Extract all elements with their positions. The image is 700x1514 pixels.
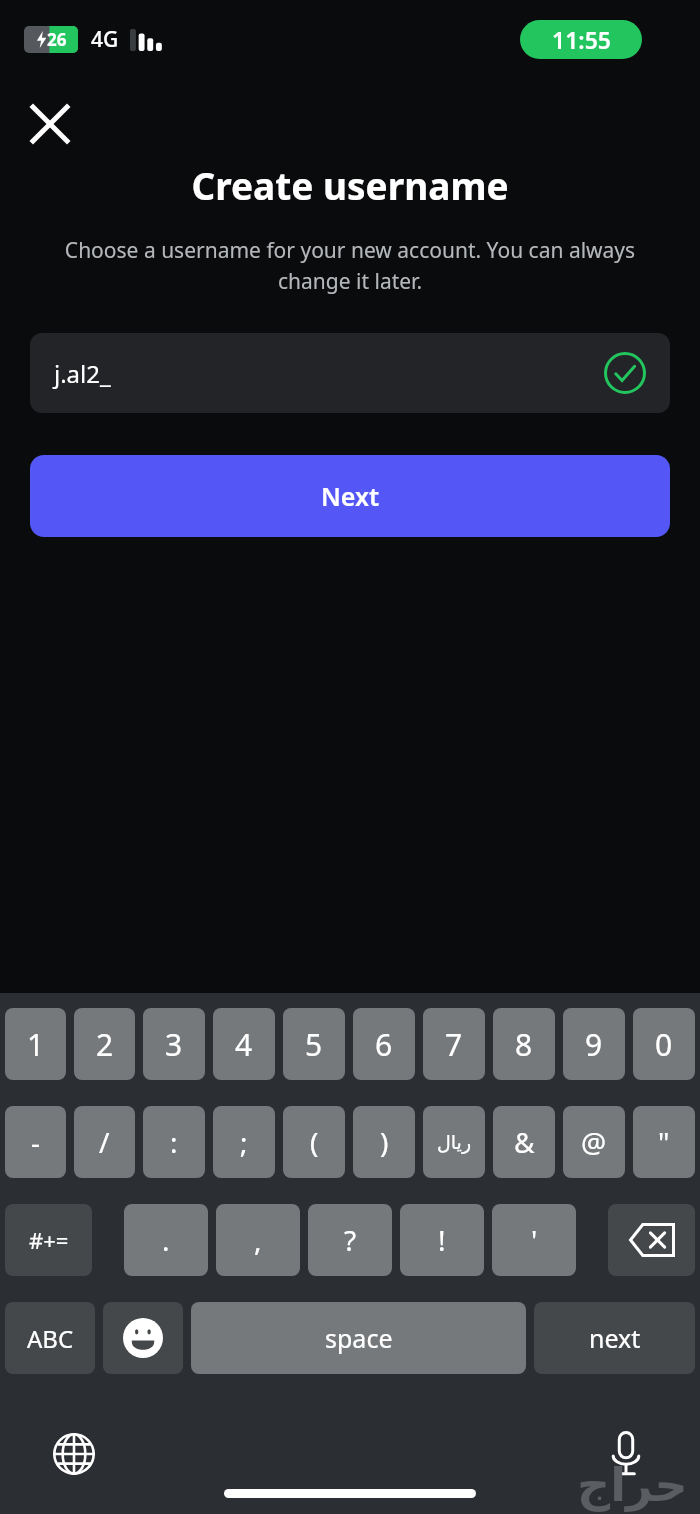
button[interactable]: ريال <box>423 1106 485 1178</box>
staticText: ABC <box>27 1322 74 1355</box>
button[interactable]: ABC <box>5 1302 95 1374</box>
staticText: - <box>31 1123 41 1161</box>
staticText: ? <box>344 1221 357 1259</box>
button[interactable]: ; <box>213 1106 275 1178</box>
staticText: / <box>99 1123 110 1161</box>
button[interactable]: ) <box>353 1106 415 1178</box>
staticText: ( <box>310 1123 319 1161</box>
staticText: #+= <box>29 1225 69 1255</box>
button[interactable]: ' <box>492 1204 576 1276</box>
staticText: j.al2_ <box>54 357 111 390</box>
staticText: Choose a username for your new account. … <box>40 236 660 295</box>
staticText: حراج <box>577 1458 688 1512</box>
button[interactable]: 9 <box>563 1008 625 1080</box>
staticText: . <box>162 1221 170 1259</box>
button[interactable]: & <box>493 1106 555 1178</box>
staticText: 2 <box>96 1024 114 1065</box>
button[interactable]: j.al2_ <box>30 333 670 413</box>
button[interactable]: 2 <box>74 1008 135 1080</box>
staticText: space <box>325 1321 393 1355</box>
staticText: 7 <box>445 1024 463 1065</box>
button[interactable]: ? <box>308 1204 392 1276</box>
button[interactable]: Change language <box>46 1426 102 1482</box>
button[interactable]: 7 <box>423 1008 485 1080</box>
staticText: 8 <box>515 1024 533 1065</box>
button[interactable]: next <box>534 1302 695 1374</box>
staticText: ! <box>438 1221 446 1259</box>
staticText: 9 <box>585 1024 603 1065</box>
button[interactable]: ! <box>400 1204 484 1276</box>
button[interactable]: : <box>143 1106 205 1178</box>
button[interactable]: 6 <box>353 1008 415 1080</box>
button[interactable]: Voice input <box>598 1426 654 1482</box>
button[interactable]: 8 <box>493 1008 555 1080</box>
button[interactable]: @ <box>563 1106 625 1178</box>
staticText: " <box>658 1123 670 1161</box>
button[interactable]: 1 <box>5 1008 66 1080</box>
staticText: @ <box>581 1123 607 1161</box>
button[interactable]: . <box>124 1204 208 1276</box>
staticText: , <box>254 1221 262 1259</box>
staticText: 11:55 <box>552 24 611 55</box>
button[interactable]: 0 <box>633 1008 695 1080</box>
button[interactable]: 5 <box>283 1008 345 1080</box>
button[interactable]: , <box>216 1204 300 1276</box>
button[interactable]: ( <box>283 1106 345 1178</box>
staticText: 1 <box>27 1024 45 1065</box>
button[interactable]: Next <box>30 455 670 537</box>
staticText: 4 <box>235 1024 253 1065</box>
staticText: ) <box>380 1123 389 1161</box>
staticText: ريال <box>437 1131 472 1153</box>
staticText: 0 <box>655 1024 673 1065</box>
staticText: : <box>170 1123 178 1161</box>
button[interactable]: Emoji <box>103 1302 183 1374</box>
staticText: 3 <box>165 1024 183 1065</box>
staticText: 26 <box>47 28 67 51</box>
button[interactable]: 4 <box>213 1008 275 1080</box>
staticText: ' <box>531 1221 538 1259</box>
button[interactable]: Backspace <box>608 1204 695 1276</box>
button[interactable]: - <box>5 1106 66 1178</box>
staticText: & <box>514 1123 535 1161</box>
staticText: Next <box>321 479 380 513</box>
button[interactable]: 3 <box>143 1008 205 1080</box>
staticText: 4G <box>91 25 119 54</box>
button[interactable]: space <box>191 1302 526 1374</box>
staticText: 5 <box>305 1024 323 1065</box>
button[interactable]: #+= <box>5 1204 92 1276</box>
staticText: 6 <box>375 1024 393 1065</box>
button[interactable]: Close <box>26 100 74 148</box>
button[interactable]: " <box>633 1106 695 1178</box>
button[interactable]: / <box>74 1106 135 1178</box>
staticText: next <box>589 1321 641 1355</box>
staticText: ; <box>240 1123 248 1161</box>
staticText: Create username <box>0 160 700 210</box>
